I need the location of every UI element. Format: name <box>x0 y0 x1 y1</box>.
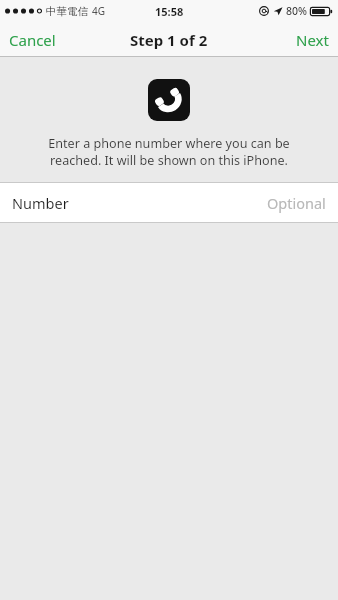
staticText: 15:58 <box>155 4 184 19</box>
staticText: 中華電信 <box>46 5 88 18</box>
staticText: Next <box>296 30 329 50</box>
staticText: Step 1 of 2 <box>130 30 208 50</box>
other: Phone app <box>148 79 190 121</box>
staticText: 80% <box>286 4 307 18</box>
staticText: Optional <box>267 193 326 213</box>
button[interactable]: Number <box>0 183 338 222</box>
staticText: 4G <box>92 4 105 18</box>
staticText: Enter a phone number where you can be re… <box>48 135 290 169</box>
button[interactable]: Cancel <box>0 24 65 56</box>
staticText: Number <box>12 193 69 213</box>
button[interactable]: Next <box>287 24 338 56</box>
staticText: Cancel <box>9 30 56 50</box>
